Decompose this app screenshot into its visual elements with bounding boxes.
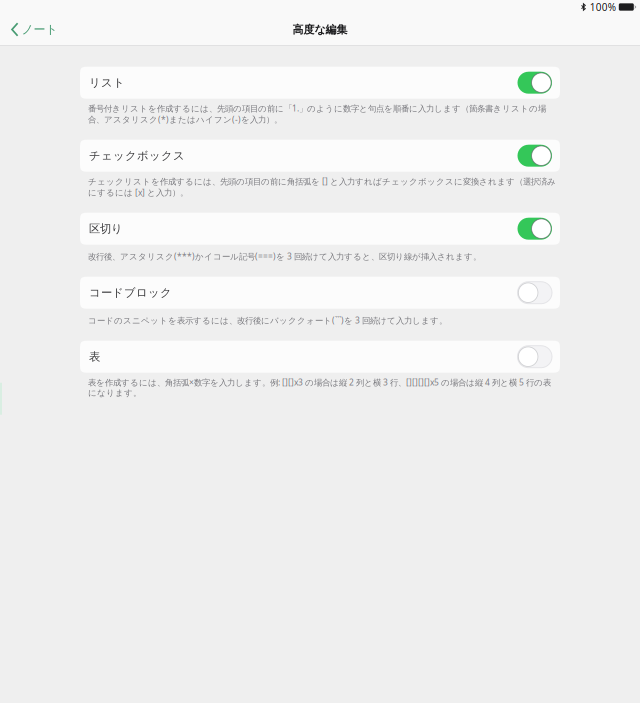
staticText: 高度な編集 [292,23,347,36]
button[interactable]: チェックボックス [80,140,560,172]
staticText: チェックボックス [89,149,185,163]
staticText: コードブロック [89,286,172,300]
staticText: リスト [89,76,125,90]
button[interactable]: コードブロック [80,277,560,309]
staticText: 100% [590,0,616,14]
staticText: チェックリストを作成するには、先頭の項目の前に角括弧を [] と入力すればチェッ… [88,176,556,198]
button[interactable]: 表 [80,341,560,373]
staticText: 番号付きリストを作成するには、先頭の項目の前に「1.」のように数字と句点を順番に… [88,103,546,125]
button[interactable]: 区切り [80,213,560,245]
staticText: 表を作成するには、角括弧×数字を入力します。例: [][]x3 の場合は縦 2 … [88,377,551,398]
staticText: 区切り [89,222,123,236]
button[interactable]: リスト [80,67,560,99]
staticText: 表 [89,350,100,364]
staticText: ノート [22,22,58,37]
button[interactable]: ノート [0,14,66,45]
staticText: 改行後、アスタリスク(***)かイコール記号(===)を 3 回続けて入力すると… [88,251,481,262]
staticText: コードのスニペットを表示するには、改行後にバッククォート(```)を 3 回続け… [88,315,447,326]
